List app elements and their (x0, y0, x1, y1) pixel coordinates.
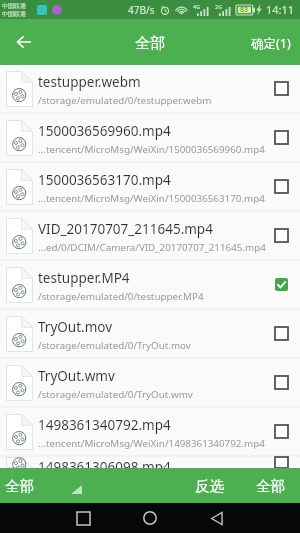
staticText: TryOut.wmv (38, 367, 115, 385)
staticText: 47B/s (128, 3, 155, 17)
staticText: /storage/emulated/0/testupper.webm (38, 94, 212, 107)
staticText: 1500036569960.mp4 (38, 122, 171, 140)
staticText: 4G (193, 3, 201, 10)
staticText: 反选 (195, 477, 224, 494)
staticText: VID_20170707_211645.mp4 (38, 220, 213, 238)
staticText: /storage/emulated/0/TryOut.wmv (38, 388, 193, 401)
staticText: 1500036563170.mp4 (38, 171, 171, 189)
staticText: 全部 (256, 477, 285, 494)
staticText: 1498361340792.mp4 (38, 416, 171, 434)
button[interactable]: 1500036569960.mp4 (0, 114, 300, 163)
staticText: 全部 (135, 34, 165, 53)
staticText: TryOut.mov (38, 318, 113, 336)
staticText: /storage/emulated/0/TryOut.mov (38, 339, 191, 352)
staticText: testupper.MP4 (38, 269, 130, 287)
button[interactable]: testupper.webm (0, 65, 300, 114)
staticText: 中国联通 (2, 10, 26, 18)
staticText: ...tencent/MicroMsg/WeiXin/1500036563170… (38, 192, 265, 205)
staticText: 14:11 (266, 2, 295, 17)
button[interactable]: 1498361340792.mp4 (0, 408, 300, 457)
staticText: 1498361306098.mp4 (38, 458, 171, 469)
button[interactable]: Back (202, 503, 232, 533)
button[interactable]: Recents (68, 503, 98, 533)
button[interactable]: 全部 (248, 468, 300, 503)
button[interactable]: 1500036563170.mp4 (0, 163, 300, 212)
button[interactable]: Home (135, 503, 165, 533)
staticText: 全部 (5, 477, 34, 495)
button[interactable]: 1498361306098.mp4 (0, 457, 300, 468)
button[interactable]: 反选 (187, 468, 232, 503)
button[interactable]: TryOut.wmv (0, 359, 300, 408)
button[interactable]: 全部 (0, 471, 87, 501)
staticText: 中国联通 (2, 2, 26, 10)
button[interactable]: testupper.MP4 (0, 261, 300, 310)
button[interactable]: Back (0, 19, 47, 65)
staticText: 2G (215, 3, 223, 10)
button[interactable]: 确定(1) (241, 24, 300, 61)
staticText: testupper.webm (38, 73, 141, 91)
button[interactable]: TryOut.mov (0, 310, 300, 359)
staticText: 确定(1) (251, 35, 291, 52)
staticText: ...tencent/MicroMsg/WeiXin/1498361340792… (38, 437, 265, 450)
staticText: ...tencent/MicroMsg/WeiXin/1500036569960… (38, 143, 265, 156)
staticText: 83 (240, 5, 249, 15)
staticText: /storage/emulated/0/testupper.MP4 (38, 290, 204, 303)
button[interactable]: VID_20170707_211645.mp4 (0, 212, 300, 261)
staticText: ...ed/0/DCIM/Camera/VID_20170707_211645.… (38, 241, 266, 254)
